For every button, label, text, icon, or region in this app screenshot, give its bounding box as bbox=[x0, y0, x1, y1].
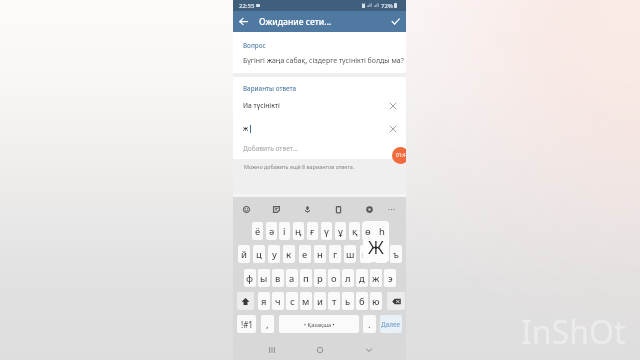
staticText: ө bbox=[365, 225, 371, 238]
staticText: л bbox=[345, 272, 351, 285]
button[interactable]: с bbox=[286, 292, 298, 310]
staticText: о bbox=[331, 272, 337, 285]
staticText: Ожидание сети... bbox=[259, 16, 332, 28]
button[interactable]: Backspace bbox=[387, 292, 405, 310]
button[interactable]: Back bbox=[233, 11, 254, 32]
button[interactable]: щ bbox=[360, 245, 372, 263]
staticText: ш bbox=[346, 248, 355, 261]
button[interactable]: Remove answer bbox=[384, 97, 402, 115]
button[interactable]: Voice input bbox=[300, 202, 314, 216]
button[interactable]: , bbox=[261, 315, 274, 333]
button[interactable]: э bbox=[384, 269, 396, 287]
staticText: г bbox=[333, 248, 338, 261]
staticText: Далее bbox=[381, 320, 401, 329]
button[interactable]: к bbox=[283, 245, 295, 263]
staticText: у bbox=[272, 248, 277, 261]
button[interactable]: р bbox=[314, 269, 326, 287]
button[interactable]: ә bbox=[266, 222, 277, 240]
button[interactable]: г bbox=[329, 245, 341, 263]
staticText: ұ bbox=[338, 225, 343, 238]
button[interactable]: і bbox=[279, 222, 290, 240]
button[interactable]: п bbox=[300, 269, 312, 287]
staticText: а bbox=[289, 272, 295, 285]
staticText: Вопрос bbox=[243, 41, 266, 50]
button[interactable]: ү bbox=[321, 222, 332, 240]
button[interactable]: ө bbox=[362, 222, 373, 240]
staticText: ч bbox=[275, 295, 281, 308]
staticText: InShOt bbox=[521, 310, 626, 354]
staticText: қ bbox=[352, 225, 358, 238]
button[interactable]: қ bbox=[349, 222, 360, 240]
button[interactable]: ц bbox=[253, 245, 265, 263]
button[interactable]: • Қазақша • bbox=[279, 315, 359, 333]
button[interactable]: т bbox=[328, 292, 340, 310]
staticText: д bbox=[359, 272, 365, 285]
staticText: н bbox=[317, 248, 323, 261]
button[interactable]: Sticker bbox=[269, 202, 283, 216]
staticText: 72% bbox=[381, 2, 393, 10]
button[interactable]: ш bbox=[344, 245, 356, 263]
button[interactable]: л bbox=[342, 269, 354, 287]
staticText: я bbox=[261, 295, 267, 308]
staticText: • Қазақша • bbox=[304, 321, 335, 328]
button[interactable]: ю bbox=[370, 292, 382, 310]
button[interactable]: е bbox=[299, 245, 311, 263]
button[interactable]: Иа түсінікті bbox=[233, 94, 406, 117]
button[interactable]: Remove answer bbox=[384, 120, 402, 138]
staticText: ү bbox=[324, 225, 329, 238]
button[interactable]: ж bbox=[233, 117, 406, 140]
button[interactable]: Shift bbox=[237, 292, 254, 310]
button[interactable]: в bbox=[272, 269, 284, 287]
staticText: щ bbox=[362, 248, 371, 261]
button[interactable]: ұ bbox=[335, 222, 346, 240]
button[interactable]: ы bbox=[258, 269, 270, 287]
button[interactable]: и bbox=[314, 292, 326, 310]
button[interactable]: ғ bbox=[307, 222, 318, 240]
button[interactable]: ң bbox=[293, 222, 304, 240]
button[interactable]: !#1 bbox=[237, 315, 256, 333]
button[interactable]: у bbox=[268, 245, 280, 263]
button[interactable]: Emoji bbox=[239, 202, 253, 216]
button[interactable]: ь bbox=[342, 292, 354, 310]
button[interactable]: ё bbox=[252, 222, 263, 240]
staticText: м bbox=[302, 295, 310, 308]
staticText: , bbox=[266, 318, 269, 331]
button[interactable]: я bbox=[258, 292, 270, 310]
staticText: ё bbox=[255, 225, 261, 238]
button[interactable]: Recent apps bbox=[263, 340, 281, 360]
button[interactable]: д bbox=[356, 269, 368, 287]
button[interactable]: й bbox=[238, 245, 250, 263]
button[interactable]: More options bbox=[384, 202, 398, 216]
staticText: Варианты ответа bbox=[243, 84, 297, 93]
button[interactable]: ф bbox=[244, 269, 256, 287]
staticText: ю bbox=[372, 295, 380, 308]
button[interactable]: ж bbox=[370, 269, 382, 287]
button[interactable]: о bbox=[328, 269, 340, 287]
button[interactable]: б bbox=[356, 292, 368, 310]
staticText: р bbox=[317, 272, 323, 285]
staticText: 01:4 bbox=[396, 152, 406, 159]
button[interactable]: Settings bbox=[362, 202, 376, 216]
staticText: ъ bbox=[393, 248, 399, 261]
button[interactable]: . bbox=[363, 315, 376, 333]
button[interactable]: Home bbox=[311, 340, 329, 360]
button[interactable]: Back bbox=[360, 340, 378, 360]
staticText: э bbox=[388, 272, 393, 285]
button[interactable]: м bbox=[300, 292, 312, 310]
staticText: ь bbox=[345, 295, 351, 308]
button[interactable]: Далее bbox=[380, 315, 402, 333]
button[interactable]: а bbox=[286, 269, 298, 287]
button[interactable]: Добавить ответ... bbox=[233, 139, 406, 158]
button[interactable]: з bbox=[375, 245, 387, 263]
button[interactable]: н bbox=[314, 245, 326, 263]
button[interactable]: һ bbox=[376, 222, 387, 240]
staticText: 22:55 bbox=[239, 2, 255, 10]
button[interactable]: ч bbox=[272, 292, 284, 310]
staticText: ы bbox=[260, 272, 268, 285]
staticText: п bbox=[303, 272, 309, 285]
staticText: !#1 bbox=[241, 319, 253, 330]
staticText: з bbox=[379, 248, 384, 261]
button[interactable]: ъ bbox=[390, 245, 402, 263]
button[interactable]: Clipboard bbox=[331, 202, 345, 216]
button[interactable]: Confirm bbox=[385, 11, 406, 32]
